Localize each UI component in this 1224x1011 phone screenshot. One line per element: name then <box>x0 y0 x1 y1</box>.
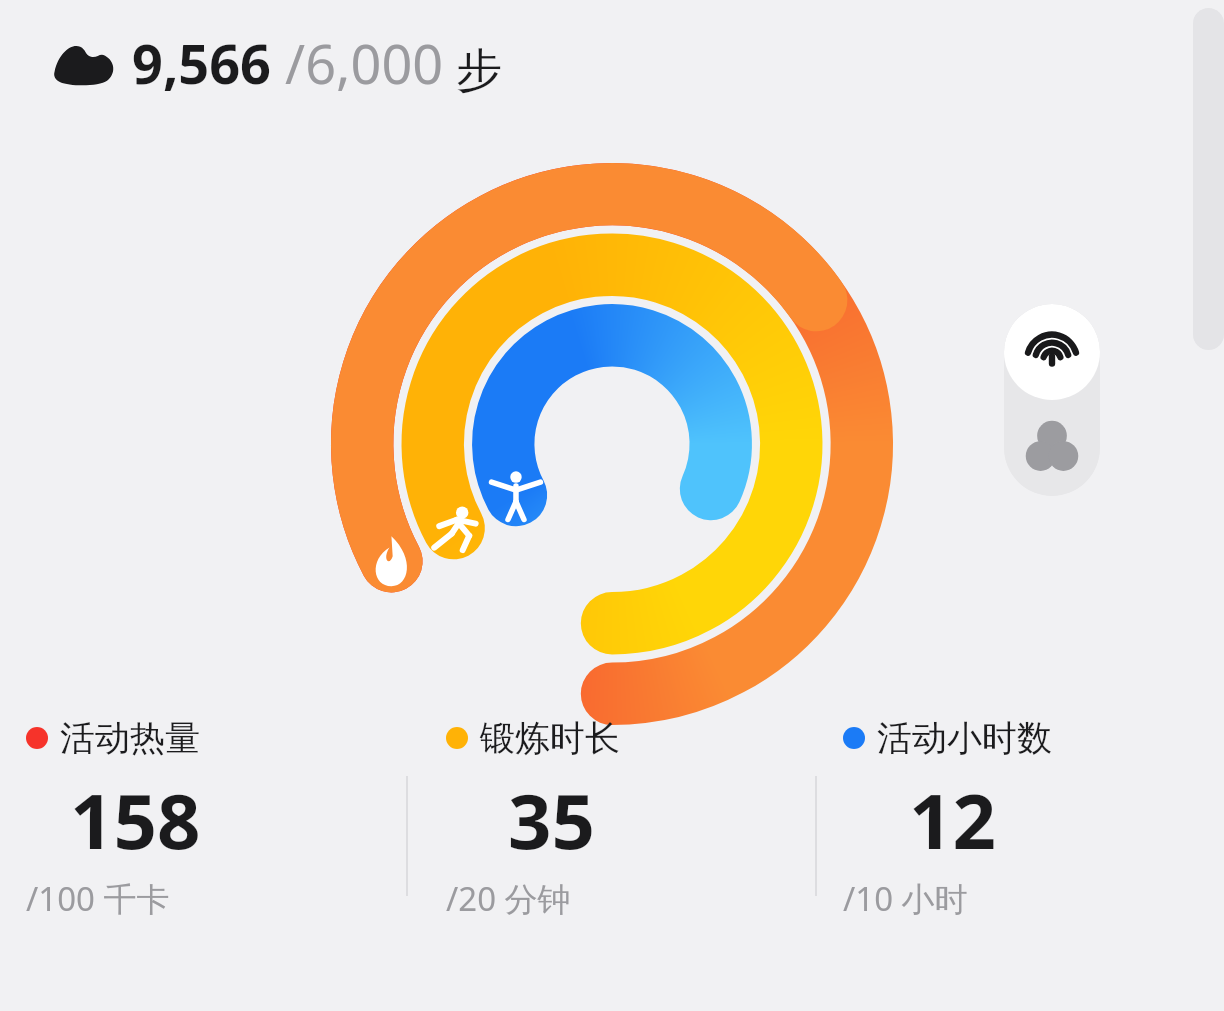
button[interactable]: Cast <box>1004 304 1100 400</box>
staticText: /20 分钟 <box>446 876 571 921</box>
button[interactable]: 活动小时数 <box>843 716 1224 921</box>
staticText: 活动小时数 <box>877 716 1052 760</box>
button[interactable]: 锻炼时长 <box>446 716 815 921</box>
staticText: 158 <box>70 768 201 872</box>
staticText: 9,566 <box>132 26 271 100</box>
staticText: 锻炼时长 <box>480 716 620 760</box>
staticText: 活动热量 <box>60 716 200 760</box>
button[interactable]: 9,566 <box>52 26 502 100</box>
staticText: /100 千卡 <box>26 876 170 921</box>
staticText: 12 <box>909 768 996 872</box>
button[interactable]: Activity rings <box>331 163 893 725</box>
staticText: 35 <box>508 768 595 872</box>
staticText: /10 小时 <box>843 876 968 921</box>
staticText: /6,000 <box>271 26 444 100</box>
button[interactable]: 活动热量 <box>26 716 406 921</box>
staticText: 步 <box>444 37 502 100</box>
button[interactable]: Activity <box>1004 400 1100 496</box>
